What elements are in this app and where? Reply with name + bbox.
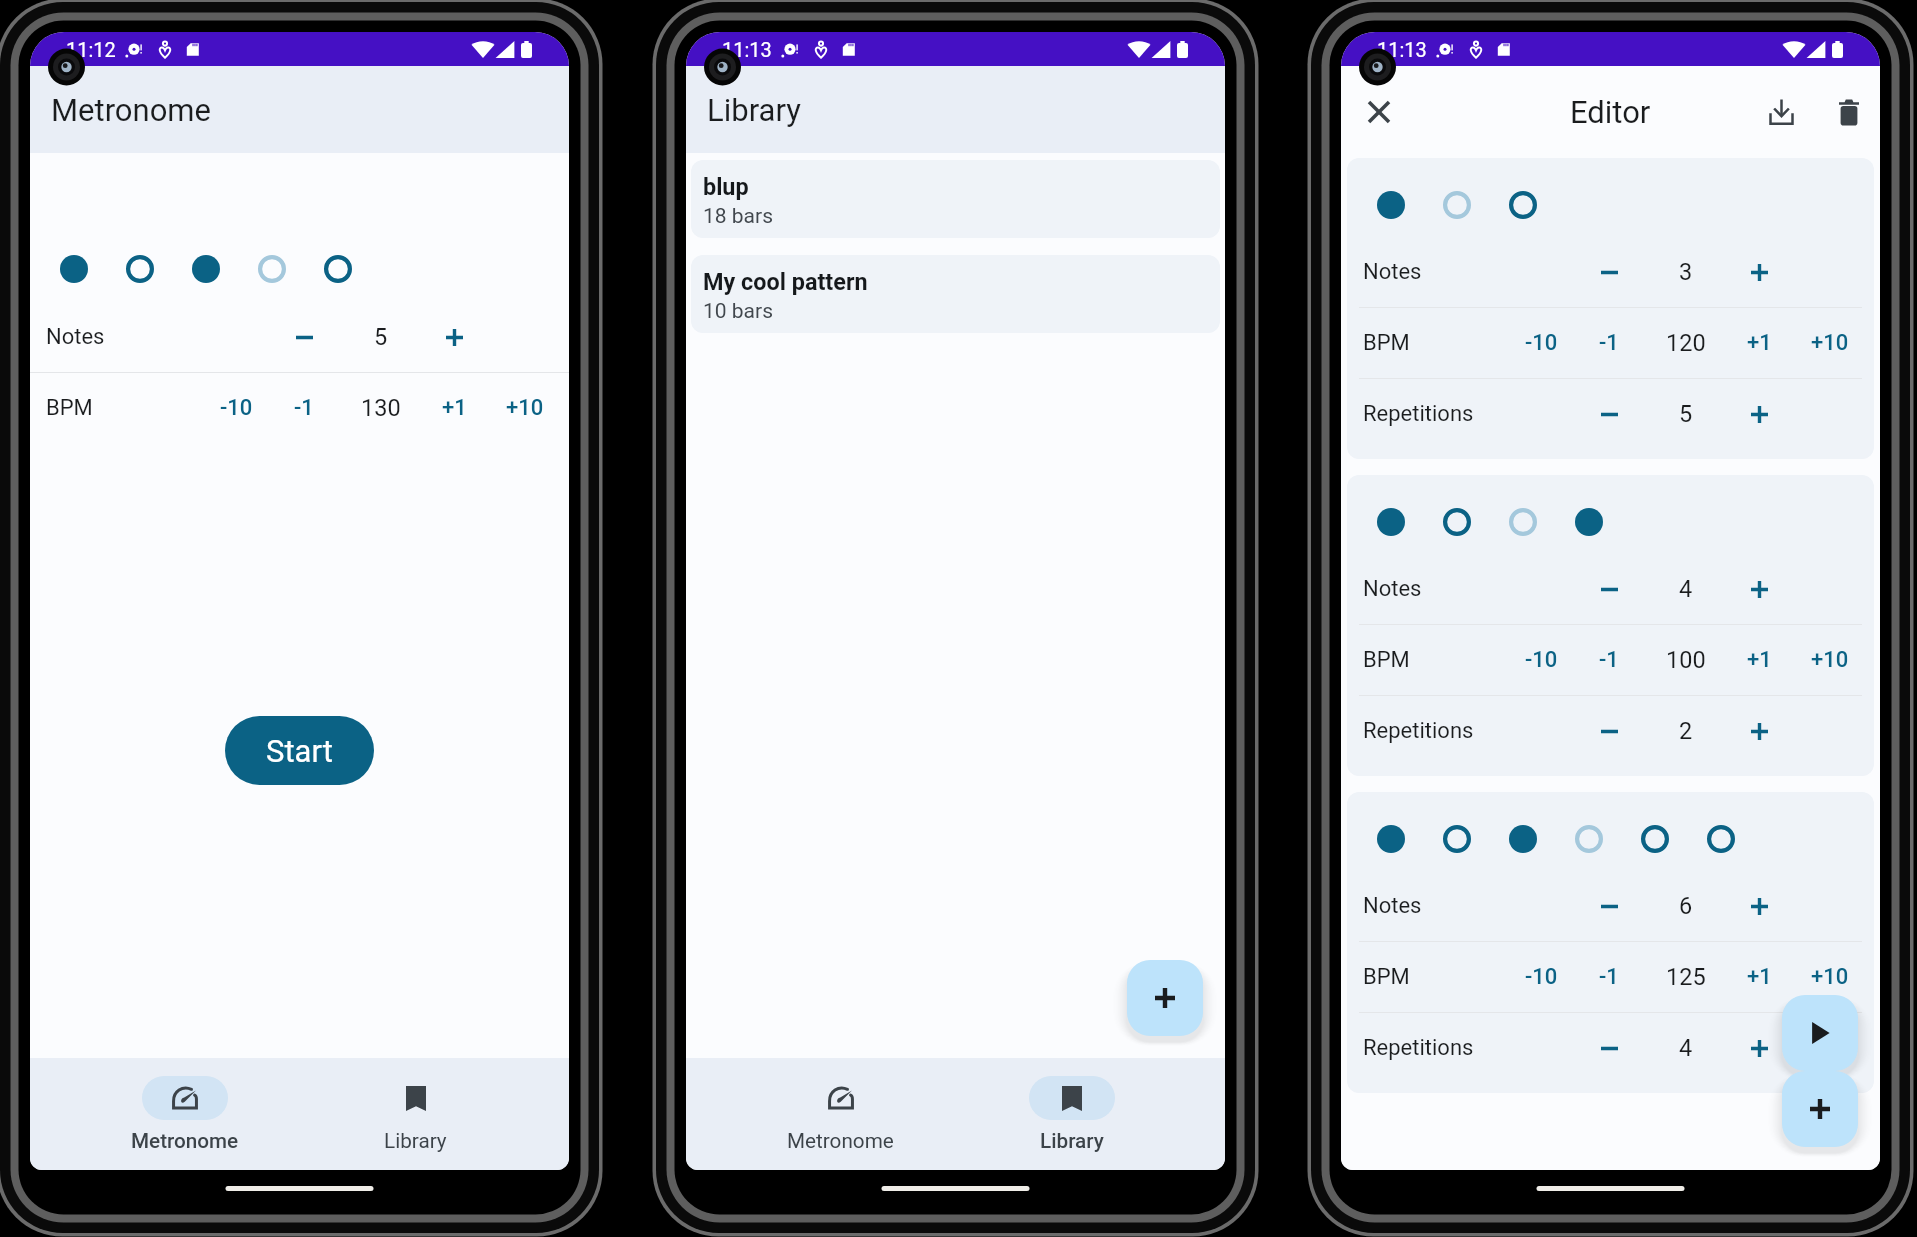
staticText: -10 <box>220 395 253 421</box>
button[interactable]: BPM minus ten <box>1510 942 1572 1012</box>
button[interactable]: BPM minus one <box>1581 625 1637 695</box>
staticText: +1 <box>1747 964 1772 990</box>
staticText: 130 <box>361 394 401 422</box>
staticText: -1 <box>1599 647 1619 673</box>
staticText: 4 <box>1679 575 1693 603</box>
staticText: -1 <box>1599 330 1619 356</box>
staticText: Repetitions <box>1363 1035 1474 1061</box>
button[interactable]: Metronome <box>69 1058 300 1170</box>
button[interactable]: Increase Notes <box>1728 237 1790 307</box>
staticText: 2 <box>1679 717 1693 745</box>
button[interactable]: Save <box>1753 84 1809 140</box>
staticText: My cool pattern <box>703 268 868 295</box>
button[interactable]: Decrease Notes <box>1578 871 1640 941</box>
staticText: -10 <box>1525 647 1558 673</box>
staticText: 100 <box>1666 646 1706 674</box>
staticText: blup <box>703 173 749 200</box>
staticText: Library <box>1040 1129 1104 1153</box>
button[interactable]: Library <box>956 1058 1187 1170</box>
button[interactable]: Decrease Repetitions <box>1578 1013 1640 1083</box>
button[interactable]: BPM plus one <box>1731 625 1787 695</box>
button[interactable]: Decrease Repetitions <box>1578 696 1640 766</box>
staticText: 3 <box>1679 258 1693 286</box>
button[interactable]: BPM plus one <box>1731 308 1787 378</box>
staticText: Notes <box>1363 893 1422 919</box>
staticText: Editor <box>1570 94 1651 130</box>
staticText: 10 bars <box>703 299 773 324</box>
button[interactable]: My cool pattern <box>691 255 1220 333</box>
button[interactable]: Close <box>1351 84 1407 140</box>
button[interactable]: blup <box>691 160 1220 238</box>
button[interactable]: BPM plus ten <box>1799 942 1861 1012</box>
staticText: Library <box>707 92 801 128</box>
button[interactable]: BPM plus ten <box>1799 308 1861 378</box>
button[interactable]: BPM minus one <box>276 373 332 443</box>
button[interactable]: BPM plus ten <box>1799 625 1861 695</box>
button[interactable]: Increase Repetitions <box>1728 379 1790 449</box>
button[interactable]: BPM minus ten <box>205 373 267 443</box>
button[interactable]: BPM minus ten <box>1510 308 1572 378</box>
button[interactable]: Decrease Notes <box>1578 554 1640 624</box>
staticText: -10 <box>1525 964 1558 990</box>
staticText: -10 <box>1525 330 1558 356</box>
button[interactable]: Increase Repetitions <box>1728 696 1790 766</box>
staticText: 11:13 <box>722 38 772 61</box>
button[interactable]: Add bar <box>1782 1071 1858 1147</box>
staticText: Notes <box>1363 259 1422 285</box>
staticText: 4 <box>1679 1034 1693 1062</box>
staticText: Library <box>384 1129 447 1153</box>
button[interactable]: Add pattern <box>1127 960 1203 1036</box>
button[interactable]: Library <box>300 1058 531 1170</box>
staticText: +1 <box>1747 330 1772 356</box>
button[interactable]: Decrease Repetitions <box>1578 379 1640 449</box>
staticText: Repetitions <box>1363 718 1474 744</box>
staticText: 125 <box>1666 963 1706 991</box>
staticText: BPM <box>1363 964 1410 990</box>
button[interactable]: Increase Repetitions <box>1728 1013 1790 1083</box>
button[interactable]: Metronome <box>725 1058 956 1170</box>
button[interactable]: Decrease Notes <box>273 302 335 372</box>
staticText: BPM <box>1363 647 1410 673</box>
staticText: 11:12 <box>66 38 116 61</box>
staticText: +10 <box>506 395 544 421</box>
button[interactable]: BPM minus ten <box>1510 625 1572 695</box>
staticText: -1 <box>294 395 314 421</box>
button[interactable]: Increase Notes <box>1728 871 1790 941</box>
staticText: +10 <box>1811 964 1849 990</box>
staticText: +1 <box>442 395 467 421</box>
staticText: Repetitions <box>1363 401 1474 427</box>
staticText: Metronome <box>131 1129 239 1153</box>
staticText: 120 <box>1666 329 1706 357</box>
staticText: +10 <box>1811 647 1849 673</box>
staticText: +1 <box>1747 647 1772 673</box>
button[interactable]: Delete <box>1821 84 1877 140</box>
staticText: Notes <box>1363 576 1422 602</box>
button[interactable]: BPM plus one <box>426 373 482 443</box>
staticText: 5 <box>1679 400 1693 428</box>
button[interactable]: Decrease Notes <box>1578 237 1640 307</box>
staticText: Notes <box>46 324 105 350</box>
staticText: Start <box>266 733 333 769</box>
staticText: -1 <box>1599 964 1619 990</box>
button[interactable]: Increase Notes <box>423 302 485 372</box>
button[interactable]: BPM plus one <box>1731 942 1787 1012</box>
button[interactable]: BPM plus ten <box>494 373 556 443</box>
staticText: 11:13 <box>1377 38 1427 61</box>
button[interactable]: BPM minus one <box>1581 308 1637 378</box>
button[interactable]: BPM minus one <box>1581 942 1637 1012</box>
staticText: +10 <box>1811 330 1849 356</box>
button[interactable]: Start <box>225 716 374 785</box>
staticText: Metronome <box>51 92 211 128</box>
staticText: BPM <box>46 395 93 421</box>
staticText: 18 bars <box>703 204 773 229</box>
staticText: 6 <box>1679 892 1693 920</box>
button[interactable]: Play <box>1782 995 1858 1071</box>
staticText: 5 <box>374 323 388 351</box>
staticText: Metronome <box>787 1129 894 1153</box>
staticText: BPM <box>1363 330 1410 356</box>
button[interactable]: Increase Notes <box>1728 554 1790 624</box>
